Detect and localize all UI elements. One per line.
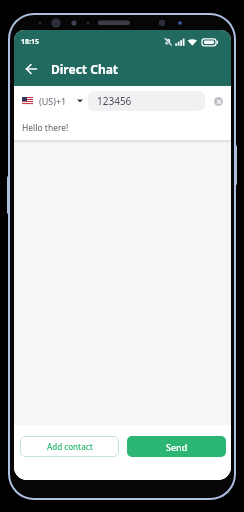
button[interactable] [214, 97, 223, 106]
staticText: Send [166, 441, 188, 453]
staticText: Add contact [47, 441, 93, 452]
button[interactable] [14, 52, 48, 86]
button[interactable]: Add contact [20, 436, 119, 457]
staticText: Direct Chat [51, 61, 119, 77]
button[interactable]: 123456 [88, 91, 205, 111]
staticText: 123456 [97, 94, 132, 108]
staticText: 18:15 [21, 37, 39, 47]
button[interactable]: Send [127, 436, 226, 457]
button[interactable]: (US)+1 [39, 95, 67, 107]
button[interactable] [77, 99, 83, 103]
button[interactable]: Hello there! [22, 122, 69, 134]
